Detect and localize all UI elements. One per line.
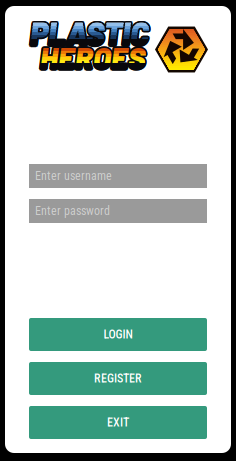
- button[interactable]: Enter username: [29, 164, 207, 188]
- staticText: PLASTIC: [30, 12, 149, 50]
- staticText: HEROES: [41, 40, 147, 76]
- staticText: PLASTIC: [28, 14, 147, 52]
- button[interactable]: Enter password: [29, 199, 207, 223]
- button[interactable]: REGISTER: [29, 362, 207, 395]
- staticText: PLASTIC: [30, 14, 149, 52]
- staticText: HEROES: [40, 39, 146, 75]
- staticText: HEROES: [38, 39, 144, 75]
- staticText: HEROES: [40, 39, 146, 75]
- staticText: REGISTER: [94, 371, 142, 386]
- staticText: HEROES: [40, 37, 146, 73]
- staticText: PLASTIC: [30, 16, 149, 53]
- staticText: PLASTIC: [30, 14, 149, 52]
- staticText: PLASTIC: [30, 14, 149, 52]
- staticText: HEROES: [42, 39, 148, 75]
- button[interactable]: LOGIN: [29, 318, 207, 351]
- staticText: HEROES: [40, 39, 146, 75]
- staticText: HEROES: [40, 39, 146, 75]
- staticText: HEROES: [39, 38, 145, 74]
- staticText: Enter password: [35, 204, 110, 218]
- staticText: HEROES: [40, 41, 146, 77]
- staticText: PLASTIC: [30, 14, 149, 52]
- staticText: PLASTIC: [30, 14, 149, 52]
- staticText: PLASTIC: [30, 14, 149, 52]
- staticText: HEROES: [40, 39, 146, 75]
- staticText: PLASTIC: [31, 13, 150, 51]
- staticText: HEROES: [40, 39, 146, 75]
- staticText: PLASTIC: [30, 14, 149, 52]
- staticText: PLASTIC: [30, 14, 149, 52]
- staticText: PLASTIC: [29, 13, 148, 51]
- staticText: HEROES: [40, 39, 146, 75]
- staticText: HEROES: [39, 40, 145, 76]
- staticText: Enter username: [35, 169, 112, 183]
- staticText: EXIT: [107, 415, 129, 430]
- staticText: PLASTIC: [32, 14, 151, 52]
- staticText: LOGIN: [103, 327, 132, 342]
- staticText: HEROES: [41, 38, 147, 74]
- staticText: PLASTIC: [31, 15, 150, 53]
- staticText: PLASTIC: [29, 15, 148, 53]
- staticText: HEROES: [40, 39, 146, 75]
- button[interactable]: EXIT: [29, 406, 207, 439]
